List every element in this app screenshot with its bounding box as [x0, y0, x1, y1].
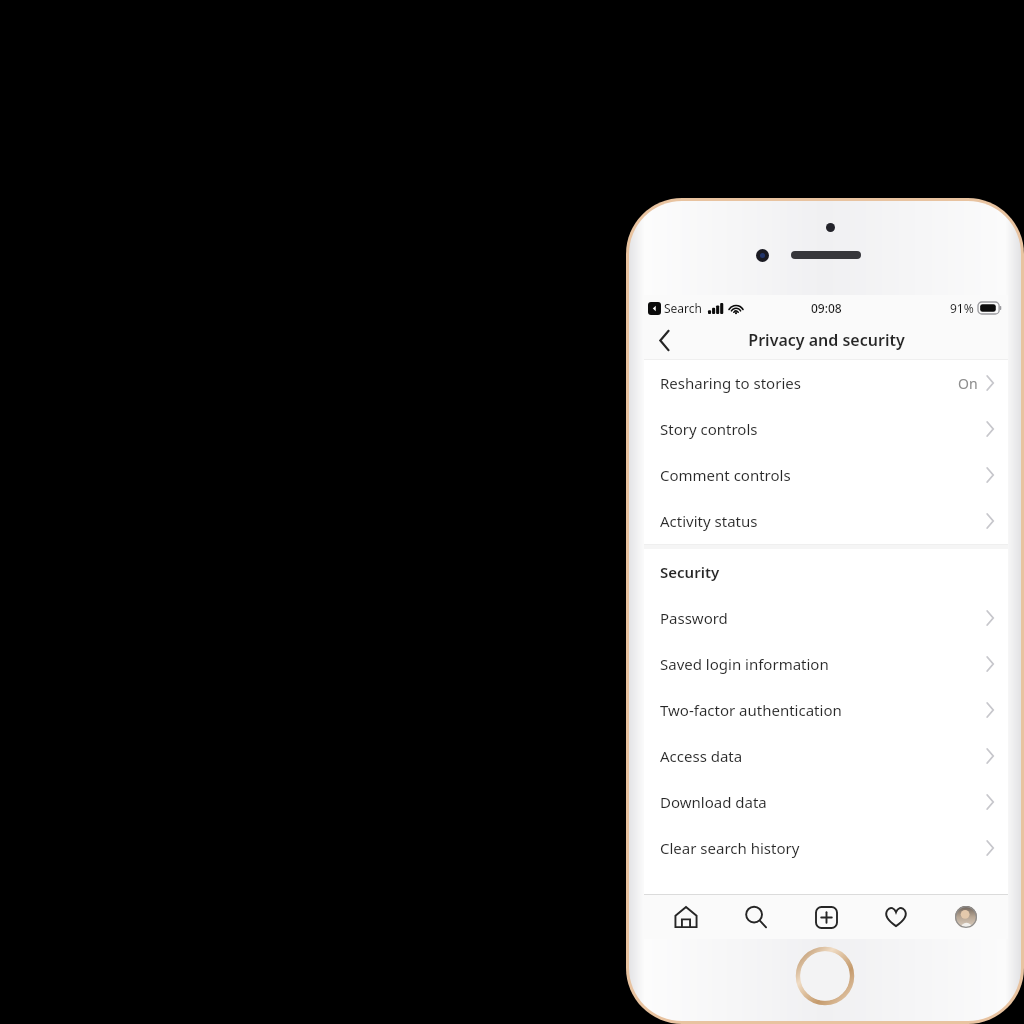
- button[interactable]: Activity status: [644, 498, 1008, 544]
- button[interactable]: Home: [796, 947, 854, 1005]
- staticText: Download data: [660, 792, 986, 812]
- staticText: Saved login information: [660, 654, 986, 674]
- staticText: 91%: [950, 300, 974, 316]
- button[interactable]: Search: [728, 895, 784, 939]
- button[interactable]: Password: [644, 595, 1008, 641]
- button[interactable]: Story controls: [644, 406, 1008, 452]
- staticText: Privacy and security: [748, 329, 905, 351]
- staticText: Comment controls: [660, 465, 986, 485]
- staticText: On: [958, 374, 978, 393]
- button[interactable]: Comment controls: [644, 452, 1008, 498]
- staticText: 09:08: [811, 300, 842, 316]
- staticText: Access data: [660, 746, 986, 766]
- button[interactable]: Back: [644, 321, 684, 359]
- staticText: Two-factor authentication: [660, 700, 986, 720]
- button[interactable]: Download data: [644, 779, 1008, 825]
- staticText: Clear search history: [660, 838, 986, 858]
- staticText: Story controls: [660, 419, 986, 439]
- staticText: Resharing to stories: [660, 373, 958, 393]
- button[interactable]: Home: [658, 895, 714, 939]
- button[interactable]: Two-factor authentication: [644, 687, 1008, 733]
- button[interactable]: Access data: [644, 733, 1008, 779]
- button[interactable]: Profile: [938, 895, 994, 939]
- staticText: Activity status: [660, 511, 986, 531]
- button[interactable]: Activity: [868, 895, 924, 939]
- staticText: Security: [660, 562, 720, 582]
- button[interactable]: Saved login information: [644, 641, 1008, 687]
- button[interactable]: Create: [798, 895, 854, 939]
- staticText: Search: [664, 300, 702, 316]
- button[interactable]: Resharing to stories: [644, 360, 1008, 406]
- staticText: Password: [660, 608, 986, 628]
- button[interactable]: Clear search history: [644, 825, 1008, 871]
